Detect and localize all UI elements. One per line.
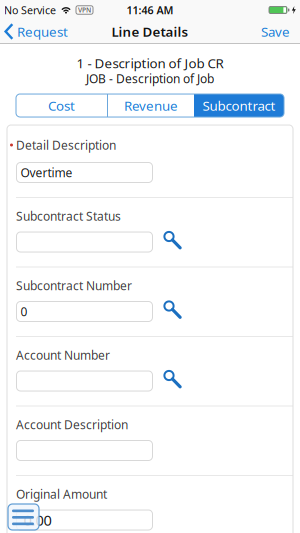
button[interactable]: Detail Description — [16, 162, 152, 182]
button[interactable]: Subcontract — [194, 94, 284, 117]
staticText: 0.00 — [23, 510, 51, 530]
button[interactable]: Account Number — [16, 371, 152, 391]
staticText: Cost — [48, 97, 75, 114]
staticText: Detail Description — [16, 137, 116, 153]
staticText: Request — [17, 23, 68, 40]
staticText: Original Amount — [16, 486, 107, 502]
staticText: Line Details — [111, 23, 188, 40]
staticText: Overtime — [20, 164, 72, 180]
staticText: Subcontract — [202, 97, 275, 114]
staticText: VPN — [78, 6, 91, 14]
staticText: Revenue — [124, 97, 178, 114]
button[interactable]: Cost — [16, 94, 107, 117]
button[interactable]: Original Amount — [16, 510, 152, 530]
button[interactable]: Search Subcontract Number — [158, 301, 182, 321]
button[interactable]: Revenue — [108, 94, 194, 117]
button[interactable]: Subcontract Number — [16, 301, 152, 321]
button[interactable]: Save — [261, 23, 300, 40]
staticText: Save — [261, 23, 290, 40]
staticText: No Service — [4, 3, 56, 17]
button[interactable]: Search Subcontract Status — [158, 232, 182, 252]
staticText: 11:46 AM — [126, 3, 173, 17]
staticText: Subcontract Status — [16, 208, 121, 224]
staticText: JOB - Description of Job — [86, 70, 214, 86]
button[interactable]: Subcontract Status — [16, 232, 152, 252]
button[interactable]: Account Description — [16, 440, 152, 460]
button[interactable]: Search Account Number — [158, 371, 182, 391]
button[interactable]: Back to Request — [0, 23, 68, 40]
staticText: Account Number — [16, 347, 110, 363]
staticText: 1 - Description of Job CR — [76, 54, 223, 72]
staticText: Account Description — [16, 416, 128, 432]
staticText: Subcontract Number — [16, 277, 132, 293]
staticText: 0 — [20, 303, 27, 319]
button[interactable]: Form layouts — [8, 504, 39, 530]
